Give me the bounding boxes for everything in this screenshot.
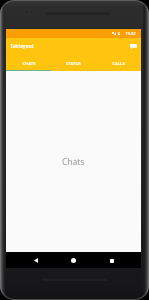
button[interactable]: CHATS — [6, 55, 51, 71]
button[interactable]: Back — [30, 255, 41, 266]
button[interactable]: Home — [68, 255, 79, 266]
staticText: 19:32 — [125, 31, 136, 37]
button[interactable]: Recent apps — [106, 255, 117, 266]
button[interactable]: CALLS — [96, 55, 141, 71]
staticText: CHATS — [22, 60, 36, 66]
staticText: Tablayout — [10, 43, 34, 50]
staticText: CALLS — [112, 60, 125, 66]
staticText: Chats — [62, 156, 85, 167]
staticText: STATUS — [66, 60, 81, 66]
button[interactable]: New message — [127, 40, 139, 52]
button[interactable]: STATUS — [51, 55, 96, 71]
